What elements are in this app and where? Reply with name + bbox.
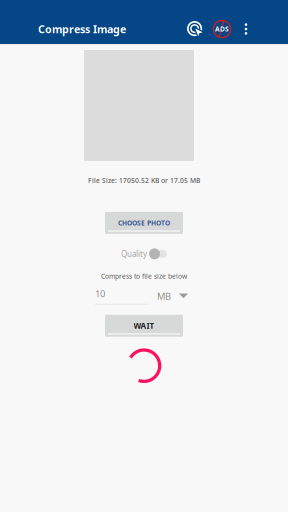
staticText: 10: [95, 287, 105, 300]
staticText: MB: [157, 290, 171, 302]
staticText: WAIT: [133, 320, 154, 331]
staticText: Compress to file size below: [101, 272, 187, 281]
button[interactable]: More options: [236, 14, 256, 44]
staticText: Compress Image: [38, 22, 126, 36]
button[interactable]: Remove ads: [208, 14, 236, 44]
staticText: File Size: 17050.52 KB or 17.05 MB: [88, 176, 200, 185]
staticText: CHOOSE PHOTO: [118, 218, 170, 227]
button[interactable]: CHOOSE PHOTO: [105, 212, 183, 234]
staticText: Quality: [121, 248, 147, 259]
button[interactable]: WAIT: [105, 315, 183, 337]
staticText: ADS: [215, 25, 229, 33]
button[interactable]: Quality: [121, 247, 167, 261]
button[interactable]: Rewarded ad: [182, 14, 208, 44]
